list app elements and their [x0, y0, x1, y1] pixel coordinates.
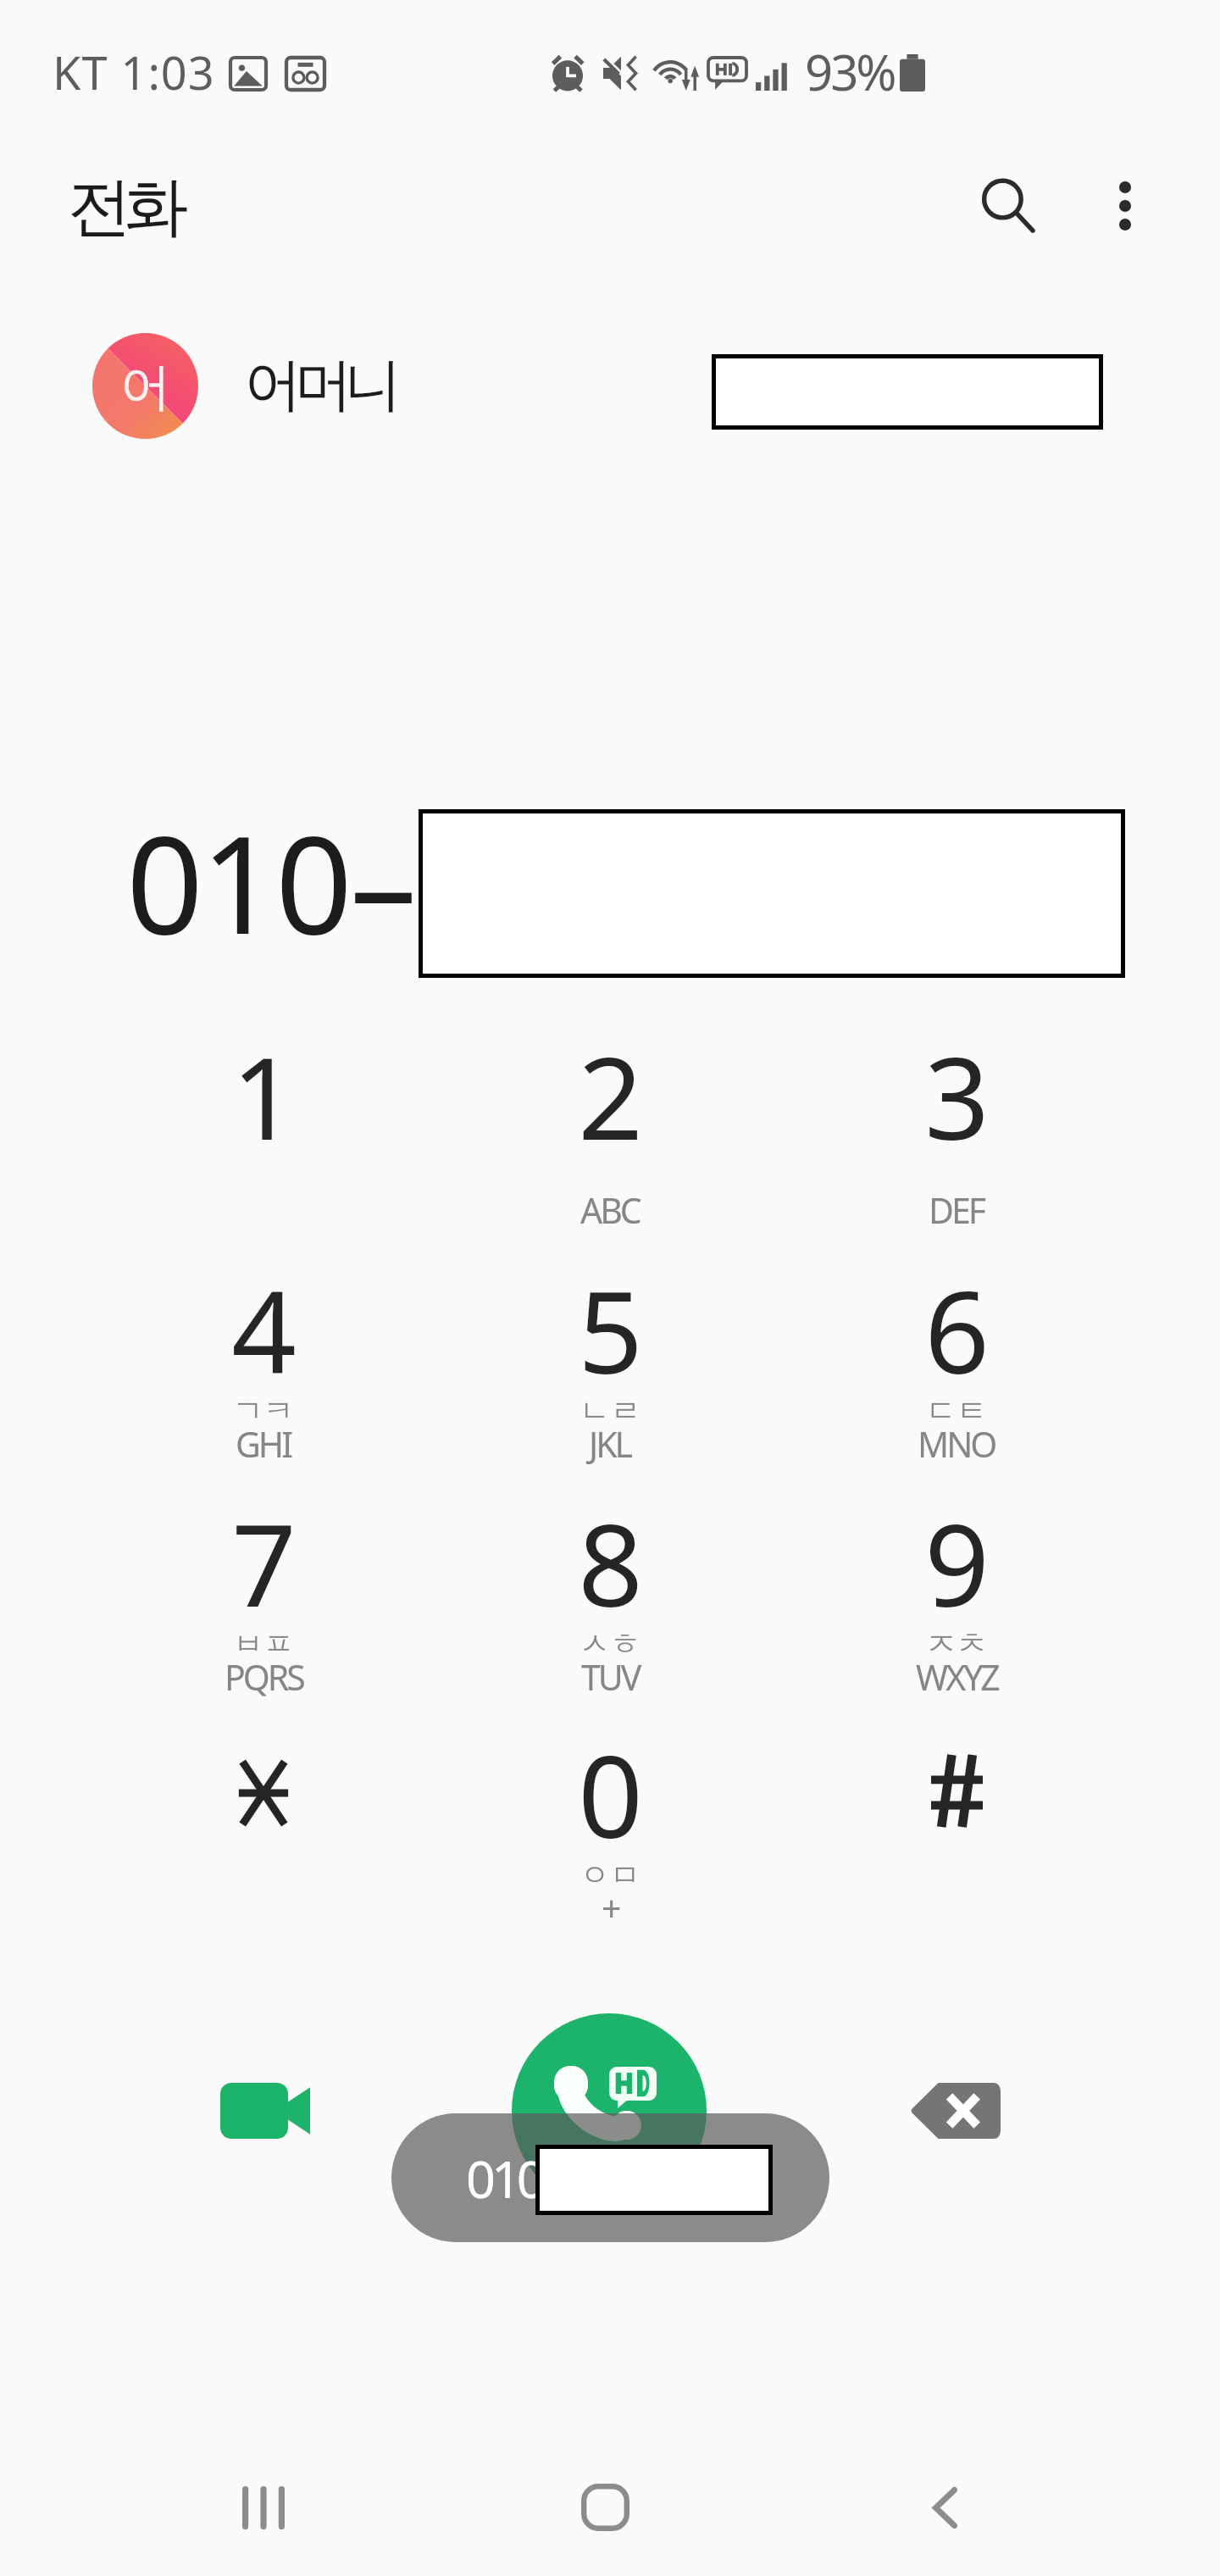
button[interactable] — [91, 1717, 436, 1942]
staticText: WXYZ — [916, 1653, 998, 1701]
button[interactable]: 8 — [437, 1485, 783, 1711]
staticText: + — [602, 1885, 619, 1932]
staticText: JKL — [589, 1420, 631, 1468]
staticText: ㅈㅊ — [926, 1624, 987, 1663]
staticText: ㄴㄹ — [579, 1391, 640, 1430]
button[interactable]: 7 — [91, 1485, 436, 1711]
button[interactable]: Back — [873, 2435, 1017, 2576]
button[interactable]: 1 — [91, 1019, 436, 1244]
staticText: 8 — [578, 1485, 643, 1641]
staticText: ㅇㅁ — [579, 1856, 640, 1894]
staticText: TUV — [581, 1653, 640, 1701]
staticText: ㄷㅌ — [926, 1391, 987, 1430]
staticText: 6 — [924, 1252, 990, 1407]
button[interactable]: 9 — [784, 1485, 1129, 1711]
button[interactable]: Video call — [193, 2039, 337, 2183]
staticText: MNO — [918, 1420, 995, 1468]
staticText: 5 — [578, 1252, 643, 1407]
staticText: 010– — [126, 790, 415, 974]
button[interactable]: 4 — [91, 1252, 436, 1478]
staticText: 어머니 — [248, 349, 398, 422]
staticText: ㄱㅋ — [233, 1391, 294, 1430]
button[interactable]: Backspace — [884, 2039, 1028, 2183]
button[interactable]: Recents — [191, 2435, 335, 2576]
staticText: 1 — [231, 1019, 297, 1174]
button[interactable]: More options — [1069, 150, 1181, 262]
staticText: 2 — [578, 1019, 643, 1174]
button[interactable]: 3 — [784, 1019, 1129, 1244]
staticText: 어 — [120, 355, 171, 419]
staticText: 93% — [805, 38, 895, 105]
button[interactable]: Home — [533, 2435, 677, 2576]
staticText: 0 — [578, 1717, 643, 1872]
staticText: ㅅㅎ — [579, 1624, 640, 1663]
staticText: 7 — [231, 1485, 297, 1641]
staticText: GHI — [236, 1420, 291, 1468]
staticText: PQRS — [225, 1653, 303, 1701]
staticText: KT 1:03 — [53, 41, 215, 103]
button[interactable]: 010 — [391, 2113, 829, 2242]
staticText: ABC — [580, 1186, 640, 1234]
button[interactable]: 0 — [437, 1717, 783, 1942]
staticText: 9 — [924, 1485, 990, 1641]
button[interactable] — [784, 1717, 1129, 1942]
staticText: ㅂㅍ — [233, 1624, 294, 1663]
button[interactable]: Call — [512, 2013, 707, 2208]
button[interactable]: 5 — [437, 1252, 783, 1478]
button[interactable]: 어 — [0, 309, 1220, 462]
staticText: DEF — [929, 1186, 984, 1234]
staticText: 3 — [924, 1019, 990, 1174]
staticText: 4 — [231, 1252, 297, 1407]
button[interactable]: 6 — [784, 1252, 1129, 1478]
staticText: 010 — [466, 2143, 542, 2213]
button[interactable]: Search — [952, 150, 1064, 262]
button[interactable]: 2 — [437, 1019, 783, 1244]
staticText: 전화 — [71, 167, 185, 248]
